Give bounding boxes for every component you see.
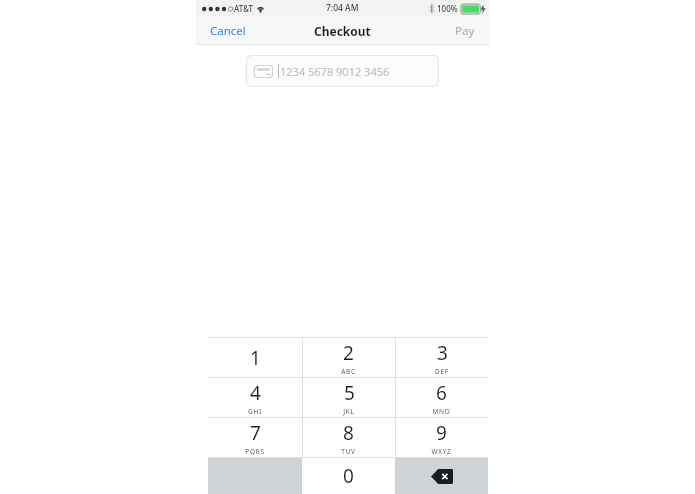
button[interactable]: Delete [395,458,488,494]
staticText: Cancel [210,23,246,39]
button[interactable]: Pay [441,19,489,43]
button[interactable]: 9 [395,418,488,457]
staticText: 8 [343,420,354,446]
staticText: ABC [341,367,356,376]
button[interactable]: 0 [302,458,395,494]
button[interactable]: 5 [302,378,395,417]
staticText: 2 [343,340,354,366]
button[interactable]: 1 [208,338,302,377]
staticText: 3 [437,340,448,366]
staticText: 5 [344,380,355,406]
button[interactable]: Cancel [196,19,260,43]
button[interactable]: 2 [302,338,395,377]
staticText: 100% [437,3,458,14]
button[interactable]: 4 [208,378,302,417]
staticText: MNO [432,407,451,416]
staticText: 0 [343,463,354,489]
staticText: DEF [435,367,449,376]
staticText: AT&T [234,3,253,14]
staticText: 7 [250,420,261,446]
staticText: WXYZ [431,447,452,456]
staticText: 6 [436,380,447,406]
button[interactable]: 6 [395,378,488,417]
staticText: PQRS [245,447,265,456]
button[interactable]: 1234 5678 9012 3456 [246,55,439,87]
button[interactable]: 8 [302,418,395,457]
staticText: 1 [250,345,261,371]
staticText: TUV [341,447,356,456]
staticText: 7:04 AM [326,2,359,14]
staticText: Checkout [314,23,371,39]
button[interactable]: 3 [395,338,488,377]
staticText: 4 [250,380,261,406]
button[interactable]: 7 [208,418,302,457]
staticText: 1234 5678 9012 3456 [280,64,390,79]
staticText: Pay [455,23,475,39]
staticText: JKL [343,407,355,416]
staticText: GHI [248,407,262,416]
staticText: 9 [436,420,447,446]
